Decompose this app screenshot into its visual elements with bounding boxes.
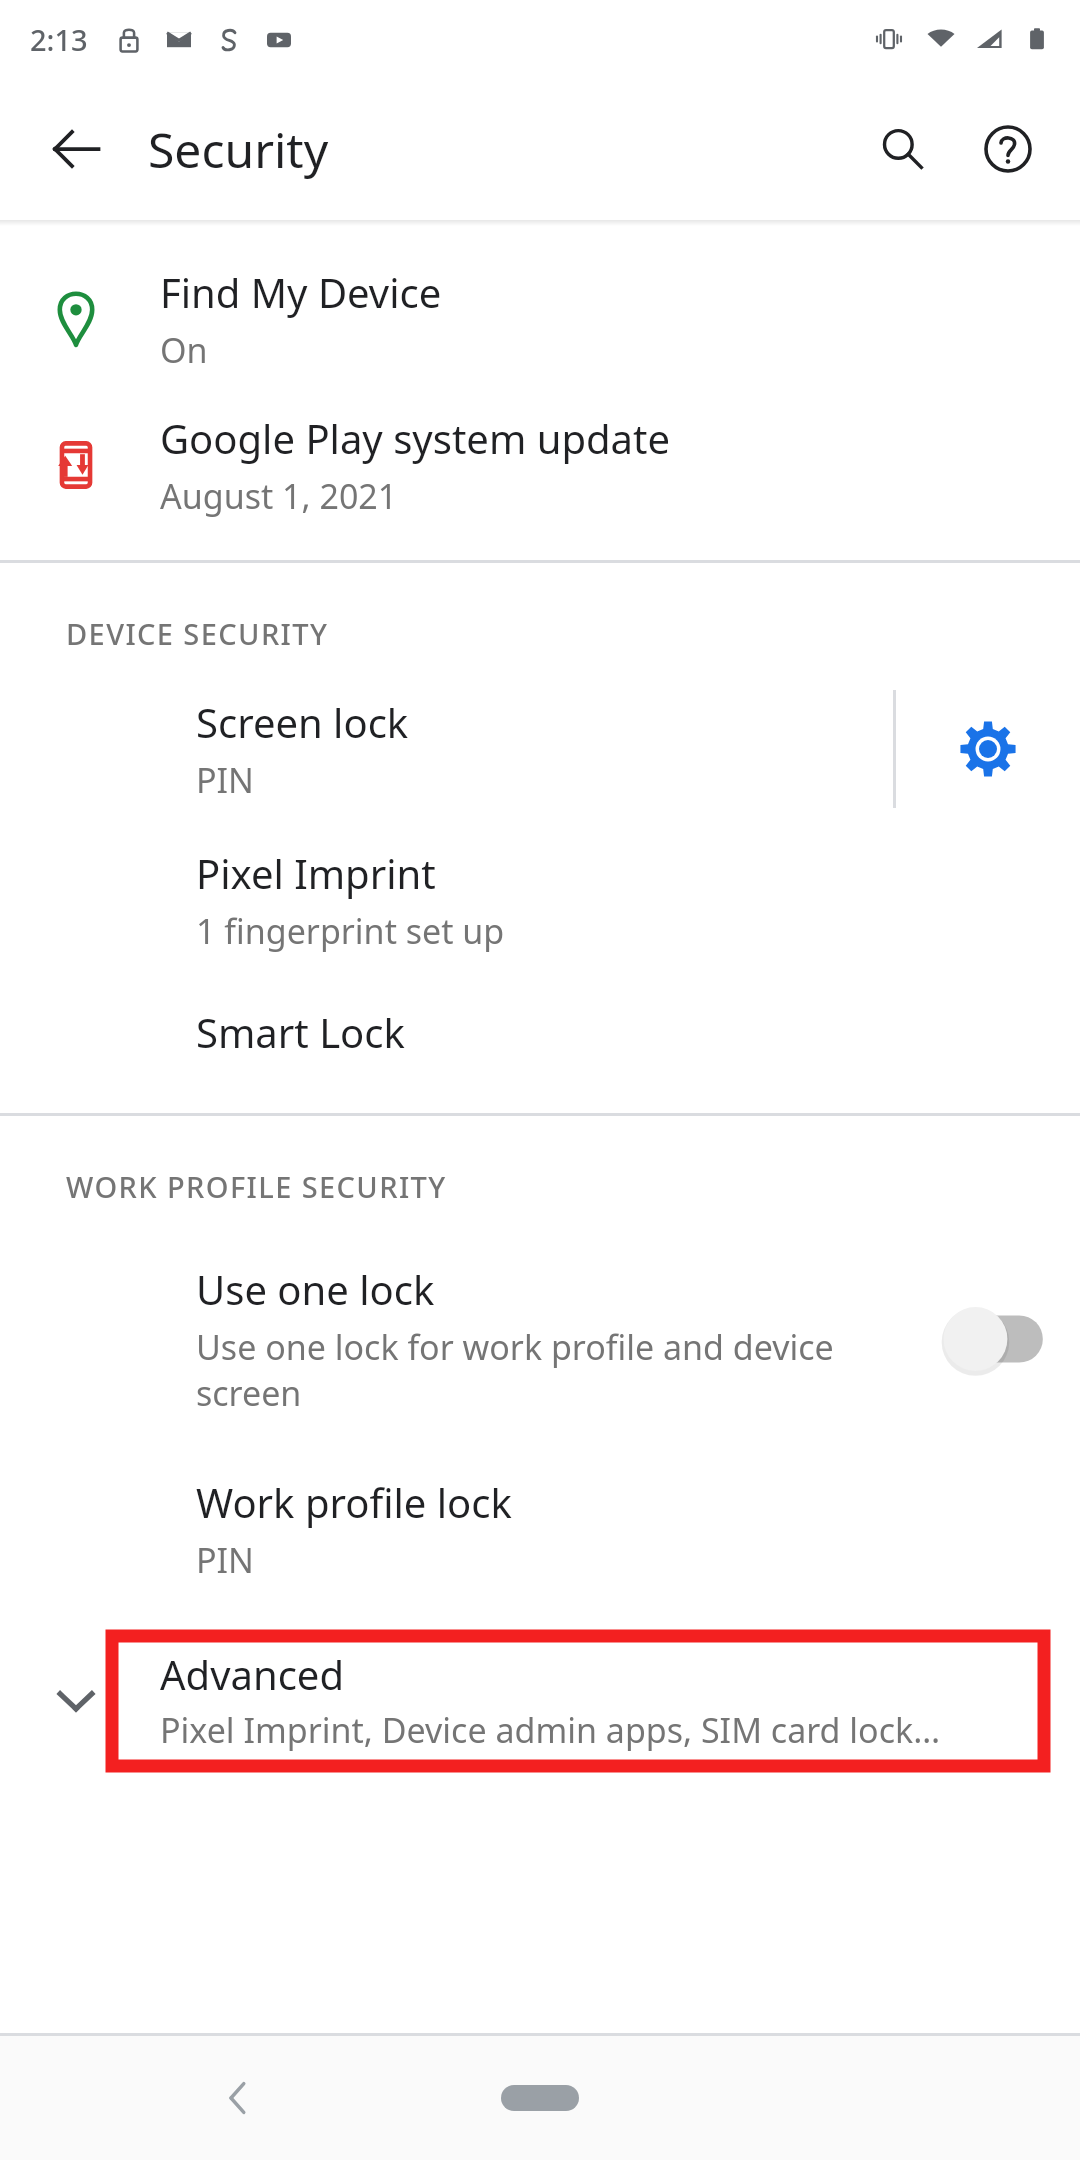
button[interactable]: Use one lock <box>0 1224 1080 1454</box>
button[interactable]: Help <box>960 101 1056 197</box>
button[interactable]: Screen lock <box>0 671 893 827</box>
button[interactable]: Find My Device <box>0 246 1080 392</box>
staticText: Google Play system update <box>160 411 671 465</box>
button[interactable]: Screen lock settings <box>896 671 1080 827</box>
staticText: Pixel Imprint <box>196 846 436 900</box>
staticText: WORK PROFILE SECURITY <box>66 1167 447 1206</box>
button[interactable]: Back <box>28 101 124 197</box>
button[interactable]: Pixel Imprint <box>0 827 1080 973</box>
button[interactable]: Advanced <box>0 1626 1080 1774</box>
staticText: DEVICE SECURITY <box>66 614 329 653</box>
staticText: PIN <box>196 1537 254 1583</box>
staticText: Work profile lock <box>196 1475 512 1529</box>
button[interactable]: Back <box>184 2043 294 2153</box>
staticText: Use one lock for work profile and device… <box>196 1324 870 1416</box>
staticText: Advanced <box>160 1647 344 1701</box>
staticText: August 1, 2021 <box>160 473 398 519</box>
button[interactable]: Work profile lock <box>0 1454 1080 1604</box>
button[interactable]: Search <box>854 101 950 197</box>
staticText: 2:13 <box>30 20 88 59</box>
staticText: 1 fingerprint set up <box>196 908 505 954</box>
staticText: Use one lock <box>196 1262 435 1316</box>
button[interactable]: Smart Lock <box>0 973 1080 1091</box>
staticText: PIN <box>196 757 254 803</box>
staticText: Smart Lock <box>196 1005 405 1059</box>
button[interactable]: Google Play system update <box>0 392 1080 538</box>
button[interactable]: Home <box>480 2038 600 2158</box>
staticText: Pixel Imprint, Device admin apps, SIM ca… <box>160 1707 941 1753</box>
staticText: Find My Device <box>160 265 442 319</box>
staticText: On <box>160 327 208 373</box>
staticText: Security <box>148 117 329 182</box>
staticText: Screen lock <box>196 695 409 749</box>
